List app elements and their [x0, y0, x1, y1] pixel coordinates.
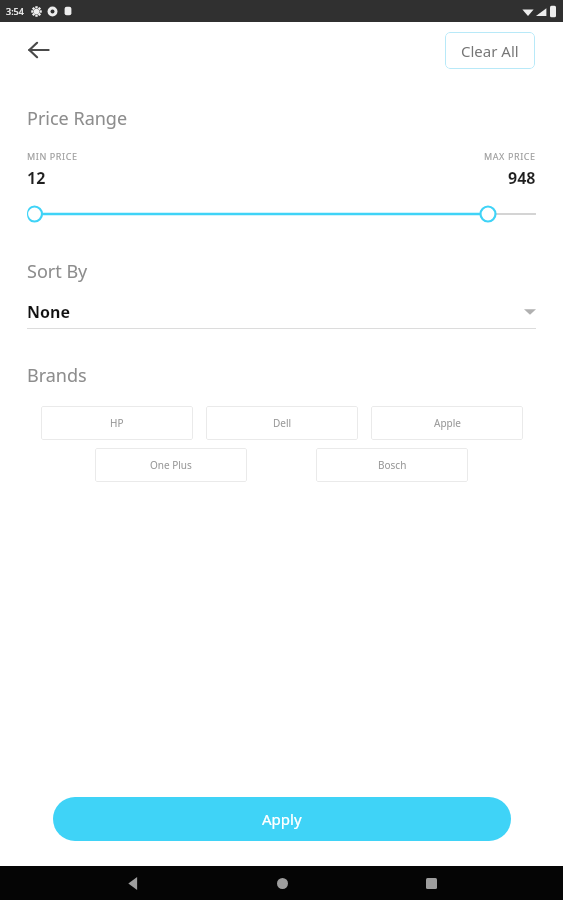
staticText: 3:54: [6, 5, 24, 17]
button[interactable]: Apple: [371, 406, 523, 440]
button[interactable]: Apply: [53, 797, 511, 841]
button[interactable]: Bosch: [316, 448, 468, 482]
button[interactable]: HP: [41, 406, 193, 440]
button[interactable]: Clear All: [445, 32, 535, 69]
staticText: Brands: [27, 363, 87, 388]
staticText: Apple: [434, 416, 461, 430]
staticText: Dell: [273, 416, 292, 430]
staticText: Bosch: [378, 458, 407, 472]
button[interactable]: Back: [116, 866, 150, 900]
button[interactable]: One Plus: [95, 448, 247, 482]
button[interactable]: None: [27, 296, 536, 328]
staticText: Price Range: [27, 106, 128, 131]
staticText: MAX PRICE: [484, 150, 536, 162]
button[interactable]: Back: [15, 26, 63, 74]
staticText: Clear All: [461, 41, 519, 61]
button[interactable]: Recent apps: [414, 866, 448, 900]
button[interactable]: Dell: [206, 406, 358, 440]
staticText: Sort By: [27, 259, 88, 284]
staticText: HP: [110, 416, 124, 430]
button[interactable]: Price range slider: [27, 203, 536, 225]
staticText: MIN PRICE: [27, 150, 78, 162]
staticText: One Plus: [150, 458, 192, 472]
staticText: Apply: [262, 809, 302, 829]
staticText: 948: [508, 167, 536, 189]
button[interactable]: Home: [265, 866, 299, 900]
staticText: 12: [27, 167, 46, 189]
staticText: None: [27, 301, 70, 323]
